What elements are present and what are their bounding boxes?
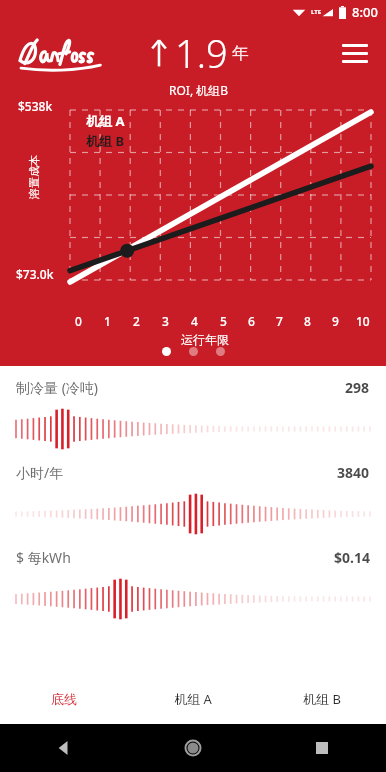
staticText: 机组 A [86,112,125,130]
staticText: LTE [311,8,322,16]
staticText: 3840 [337,463,370,482]
staticText: 机组 A [174,690,212,708]
staticText: 10 [356,313,370,329]
staticText: 小时/年 [16,463,64,482]
staticText: 溶置成本 [27,155,41,199]
button[interactable]: 底线 [0,682,128,716]
button[interactable] [216,347,225,356]
staticText: 7 [276,313,283,329]
button[interactable]: 机组 A [128,682,257,716]
staticText: 年 [232,43,249,64]
other: Danfoss [14,34,122,72]
staticText: 1 [104,313,111,329]
staticText: 8:00 [352,3,378,21]
staticText: 1.9 [175,27,228,79]
button[interactable]: $ 每kWh [0,548,386,633]
staticText: 机组 B [303,690,341,708]
staticText: 6 [248,313,255,329]
staticText: $73.0k [16,266,54,282]
staticText: 机组 B [86,132,125,150]
staticText: 制冷量 (冷吨) [16,378,99,397]
staticText: 5 [220,313,227,329]
staticText: 298 [345,378,370,397]
staticText: 2 [133,313,140,329]
button[interactable] [189,347,198,356]
staticText: $ 每kWh [16,548,71,567]
button[interactable] [162,347,171,356]
staticText: 8 [304,313,311,329]
button[interactable]: Recent apps [305,731,339,765]
staticText: 运行年限 [181,332,229,347]
staticText: 4 [191,313,198,329]
button[interactable]: Menu [336,38,374,69]
button[interactable]: 小时/年 [0,463,386,548]
staticText: $538k [18,98,53,114]
button[interactable]: Back [47,731,81,765]
button[interactable]: 机组 B [257,682,386,716]
staticText: 底线 [51,691,77,707]
staticText: ROI, 机组B [169,82,229,98]
staticText: 9 [332,313,339,329]
staticText: 3 [162,313,169,329]
button[interactable]: Home [176,731,210,765]
staticText: $0.14 [334,548,370,567]
staticText: 0 [75,313,82,329]
button[interactable]: 制冷量 (冷吨) [0,378,386,463]
